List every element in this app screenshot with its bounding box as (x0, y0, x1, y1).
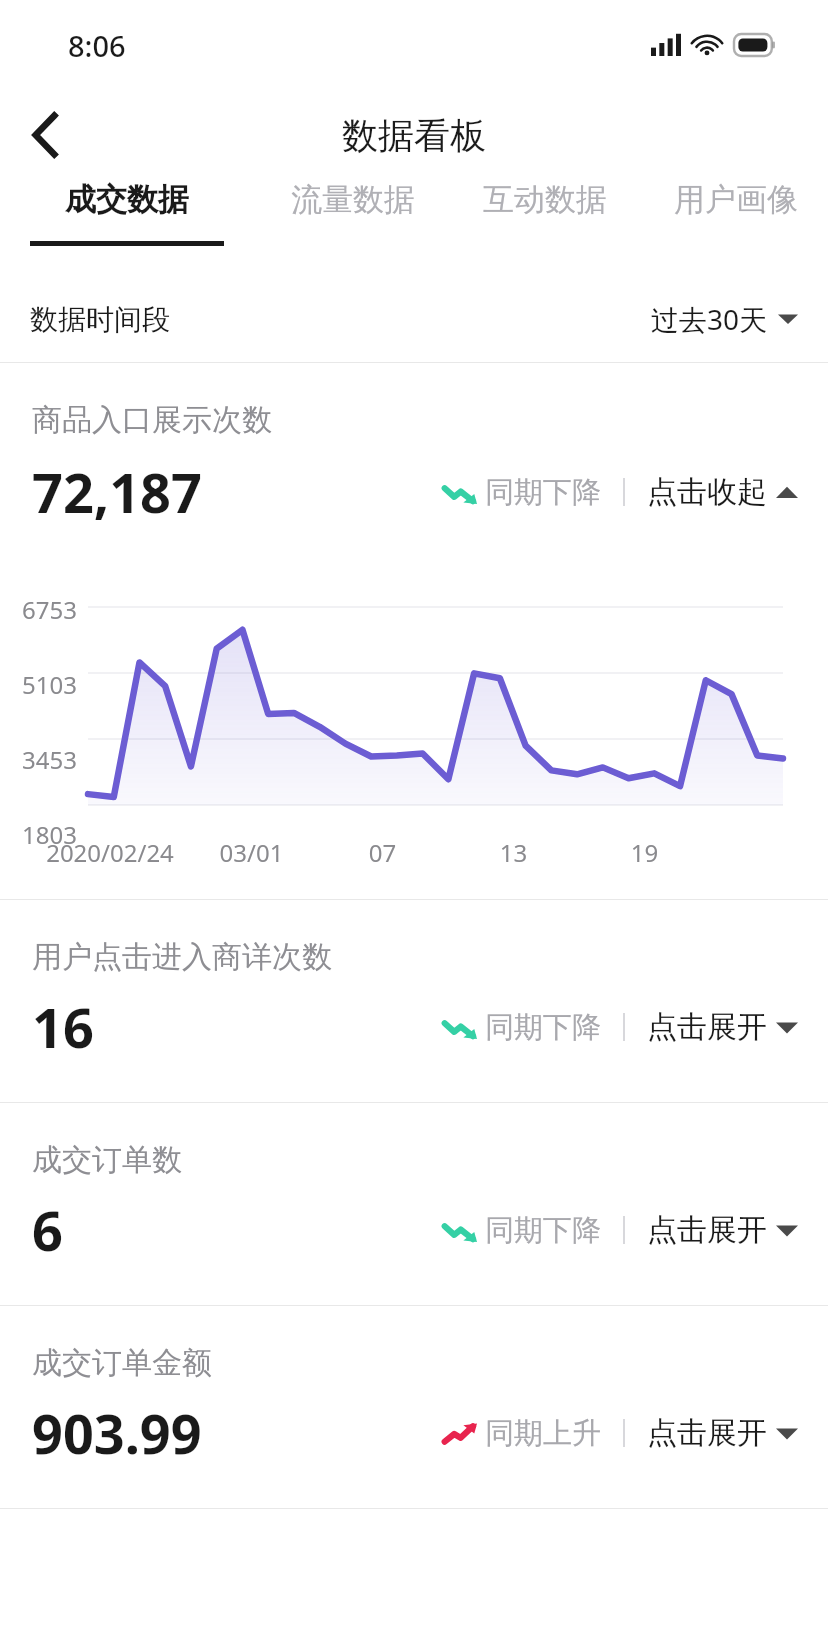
staticText: 2020/02/24 (34, 836, 186, 869)
button[interactable]: 流量数据 (291, 180, 415, 246)
staticText: 6753 (22, 593, 84, 626)
staticText: 数据时间段 (30, 302, 170, 337)
staticText: 16 (32, 990, 94, 1064)
button[interactable]: Back (0, 90, 92, 180)
staticText: 同期下降 (485, 474, 601, 511)
staticText: 1803 (22, 818, 84, 851)
staticText: 成交订单金额 (32, 1344, 212, 1382)
staticText: 5103 (22, 668, 84, 701)
staticText: 19 (579, 836, 710, 869)
staticText: 03/01 (186, 836, 317, 869)
staticText: 成交订单数 (32, 1141, 182, 1179)
button[interactable]: 过去30天 (651, 300, 798, 338)
button[interactable]: 点击展开 (647, 1008, 798, 1046)
staticText: 07 (317, 836, 448, 869)
button[interactable]: 用户画像 (674, 180, 798, 246)
button[interactable]: 点击收起 (647, 473, 798, 511)
staticText: 互动数据 (483, 180, 607, 219)
staticText: 同期下降 (485, 1009, 601, 1046)
button[interactable]: 成交数据 (30, 180, 224, 246)
staticText: 过去30天 (651, 300, 768, 338)
staticText: 72,187 (32, 455, 202, 529)
staticText: 用户画像 (674, 180, 798, 219)
staticText: 13 (448, 836, 579, 869)
staticText: 点击展开 (647, 1211, 767, 1249)
staticText: 903.99 (32, 1396, 202, 1470)
staticText: 3453 (22, 743, 84, 776)
staticText: 同期下降 (485, 1212, 601, 1249)
button[interactable]: 点击展开 (647, 1414, 798, 1452)
staticText: 成交数据 (65, 180, 189, 219)
staticText: 数据看板 (342, 113, 486, 158)
staticText: 8:06 (68, 26, 126, 65)
staticText: 商品入口展示次数 (32, 401, 272, 439)
staticText: 点击展开 (647, 1008, 767, 1046)
button[interactable]: 互动数据 (483, 180, 607, 246)
staticText: 用户点击进入商详次数 (32, 938, 332, 976)
button[interactable]: 点击展开 (647, 1211, 798, 1249)
staticText: 点击展开 (647, 1414, 767, 1452)
staticText: 点击收起 (647, 473, 767, 511)
staticText: 同期上升 (485, 1415, 601, 1452)
button[interactable]: 用户点击进入商详次数 (0, 900, 828, 1102)
staticText: 6 (32, 1193, 63, 1267)
button[interactable]: 成交订单数 (0, 1103, 828, 1305)
staticText: 流量数据 (291, 180, 415, 219)
button[interactable]: 成交订单金额 (0, 1306, 828, 1508)
